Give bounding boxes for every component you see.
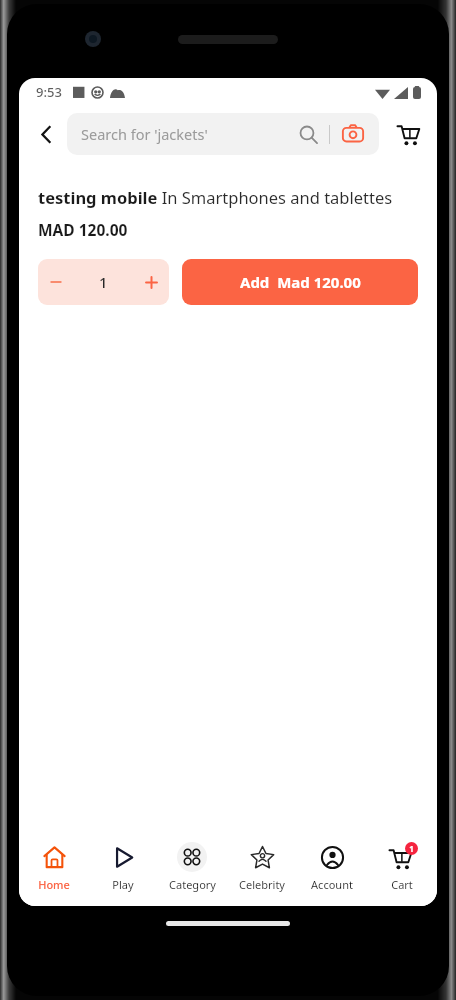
staticText: Cart xyxy=(391,877,413,892)
button[interactable]: Cart xyxy=(391,117,425,151)
button[interactable]: Increase quantity xyxy=(133,259,169,305)
staticText: Home xyxy=(38,877,70,892)
button[interactable]: Celebrity xyxy=(227,836,297,898)
staticText: Account xyxy=(311,877,353,892)
button[interactable]: Home xyxy=(19,836,88,898)
staticText: Play xyxy=(112,877,134,892)
staticText: Search for 'jackets' xyxy=(81,124,299,144)
staticText: 1 xyxy=(409,843,414,854)
staticText: Add Mad 120.00 xyxy=(240,272,361,292)
button[interactable]: Search by camera xyxy=(341,122,365,146)
staticText: Celebrity xyxy=(239,877,285,892)
staticText: 1 xyxy=(99,272,108,292)
button[interactable]: Account xyxy=(297,836,367,898)
button[interactable]: Play xyxy=(88,836,157,898)
button[interactable]: Back xyxy=(29,117,63,151)
staticText: testing mobile In Smartphones and tablet… xyxy=(38,186,393,208)
button[interactable]: Decrease quantity xyxy=(38,259,74,305)
staticText: 9:53 xyxy=(36,83,62,101)
button[interactable]: Search for 'jackets' xyxy=(67,113,379,155)
staticText: Category xyxy=(169,877,216,892)
button[interactable]: Add Mad 120.00 xyxy=(182,259,418,305)
button[interactable]: Category xyxy=(157,836,227,898)
staticText: MAD 120.00 xyxy=(38,219,128,240)
button[interactable]: 1 xyxy=(367,836,437,898)
